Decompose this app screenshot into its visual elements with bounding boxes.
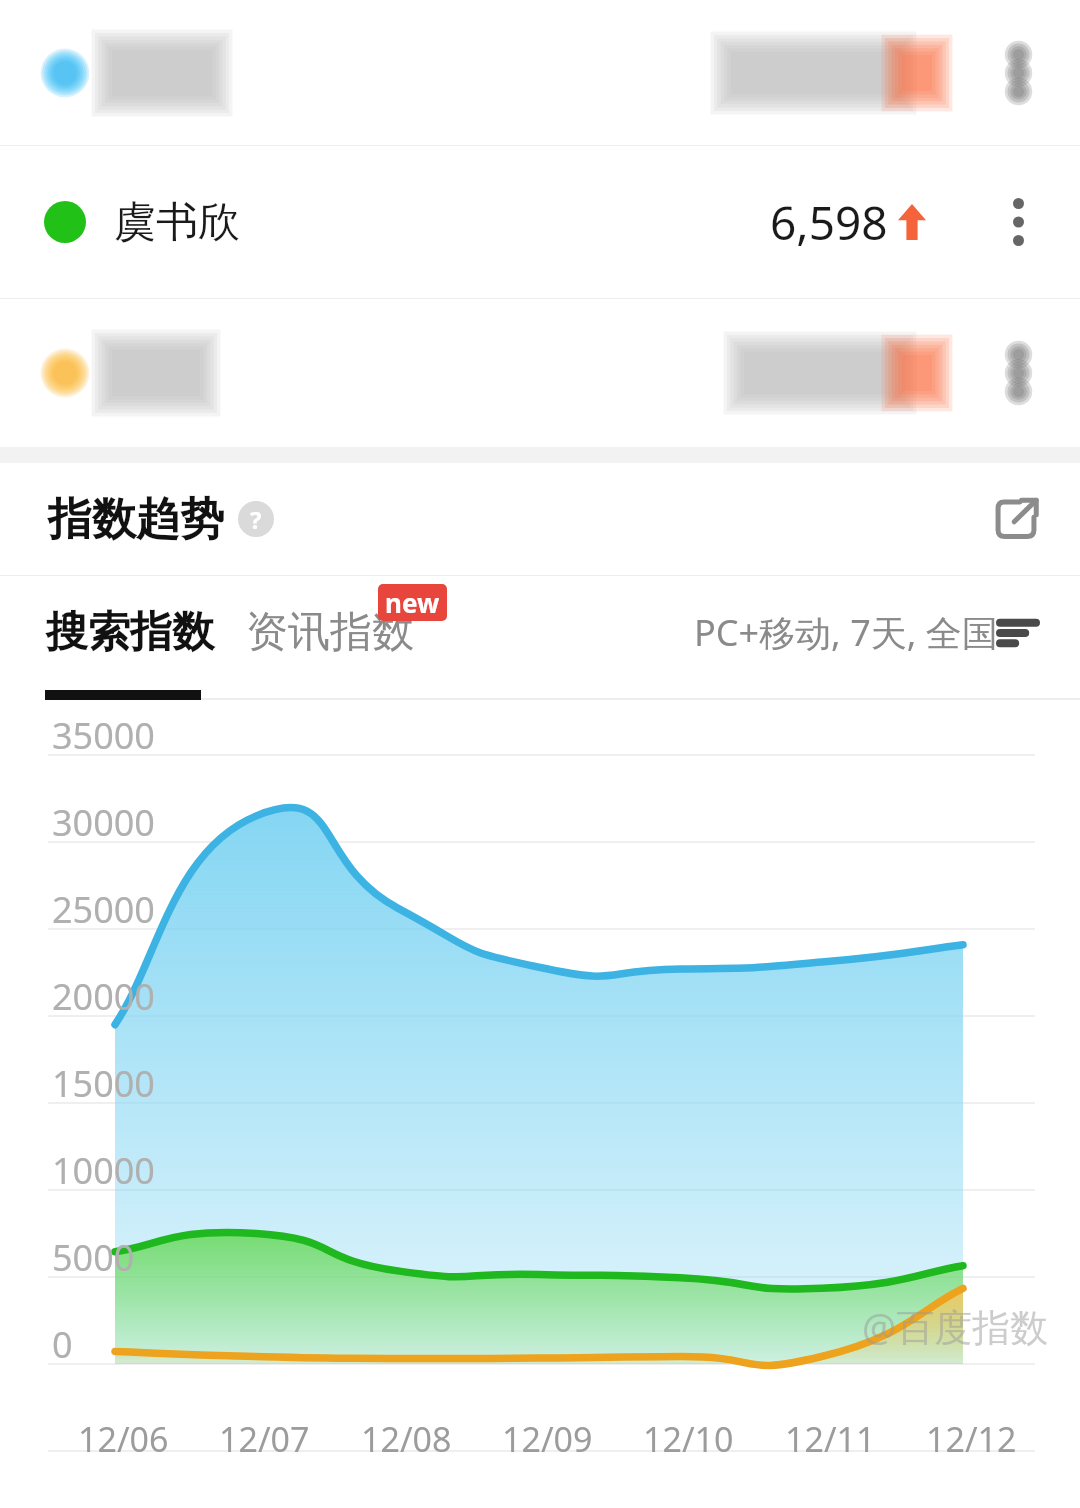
staticText: 12/10 — [643, 1416, 734, 1462]
staticText: 5000 — [52, 1233, 135, 1282]
staticText: 10000 — [52, 1146, 155, 1195]
staticText: 12/12 — [926, 1416, 1017, 1462]
staticText: 12/09 — [502, 1416, 593, 1462]
staticText: 12/07 — [219, 1416, 310, 1462]
button[interactable]: 搜索指数 — [46, 586, 214, 679]
staticText: 0 — [52, 1320, 73, 1369]
staticText: 12/11 — [785, 1416, 876, 1462]
button[interactable]: More options — [0, 299, 1080, 447]
staticText: PC+移动, 7天, 全国 — [694, 608, 998, 657]
button[interactable]: Help — [238, 501, 274, 537]
staticText: 指数趋势 — [48, 492, 224, 547]
staticText: new — [385, 585, 440, 620]
button[interactable]: More options — [990, 327, 1046, 419]
staticText: 资讯指数 — [246, 606, 414, 659]
staticText: 虞书欣 — [114, 196, 240, 249]
button[interactable]: PC+移动, 7天, 全国 — [686, 608, 1044, 657]
staticText: 15000 — [52, 1059, 155, 1108]
button[interactable]: 指数趋势 — [0, 463, 1080, 575]
button[interactable]: Open in new — [966, 469, 1066, 569]
staticText: 20000 — [52, 972, 155, 1021]
staticText: 35000 — [52, 711, 155, 760]
staticText: @百度指数 — [862, 1300, 1049, 1352]
button[interactable]: 虞书欣 — [0, 146, 1080, 298]
button[interactable]: 资讯指数 — [246, 586, 414, 679]
staticText: 25000 — [52, 885, 155, 934]
staticText: 6,598 — [770, 191, 888, 254]
button[interactable]: More options — [990, 176, 1046, 268]
button[interactable]: More options — [0, 0, 1080, 145]
staticText: 12/06 — [78, 1416, 169, 1462]
button[interactable]: More options — [990, 27, 1046, 119]
staticText: ? — [250, 503, 262, 536]
staticText: 12/08 — [361, 1416, 452, 1462]
staticText: 搜索指数 — [46, 606, 214, 659]
staticText: 30000 — [52, 798, 155, 847]
